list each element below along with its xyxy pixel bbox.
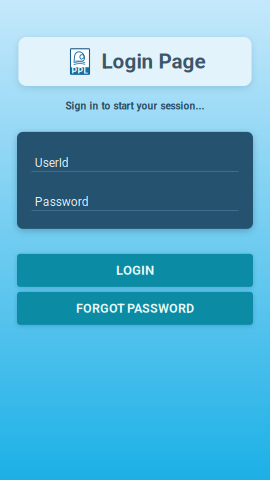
button[interactable]: LOGIN <box>17 254 253 287</box>
staticText: Sign in to start your session... <box>65 100 204 112</box>
staticText: Login Page <box>101 49 205 74</box>
staticText: UserId <box>35 156 69 170</box>
staticText: PPL <box>71 66 88 76</box>
staticText: Password <box>35 195 89 209</box>
button[interactable]: FORGOT PASSWORD <box>17 292 253 325</box>
staticText: FORGOT PASSWORD <box>76 301 194 316</box>
staticText: LOGIN <box>116 263 154 278</box>
